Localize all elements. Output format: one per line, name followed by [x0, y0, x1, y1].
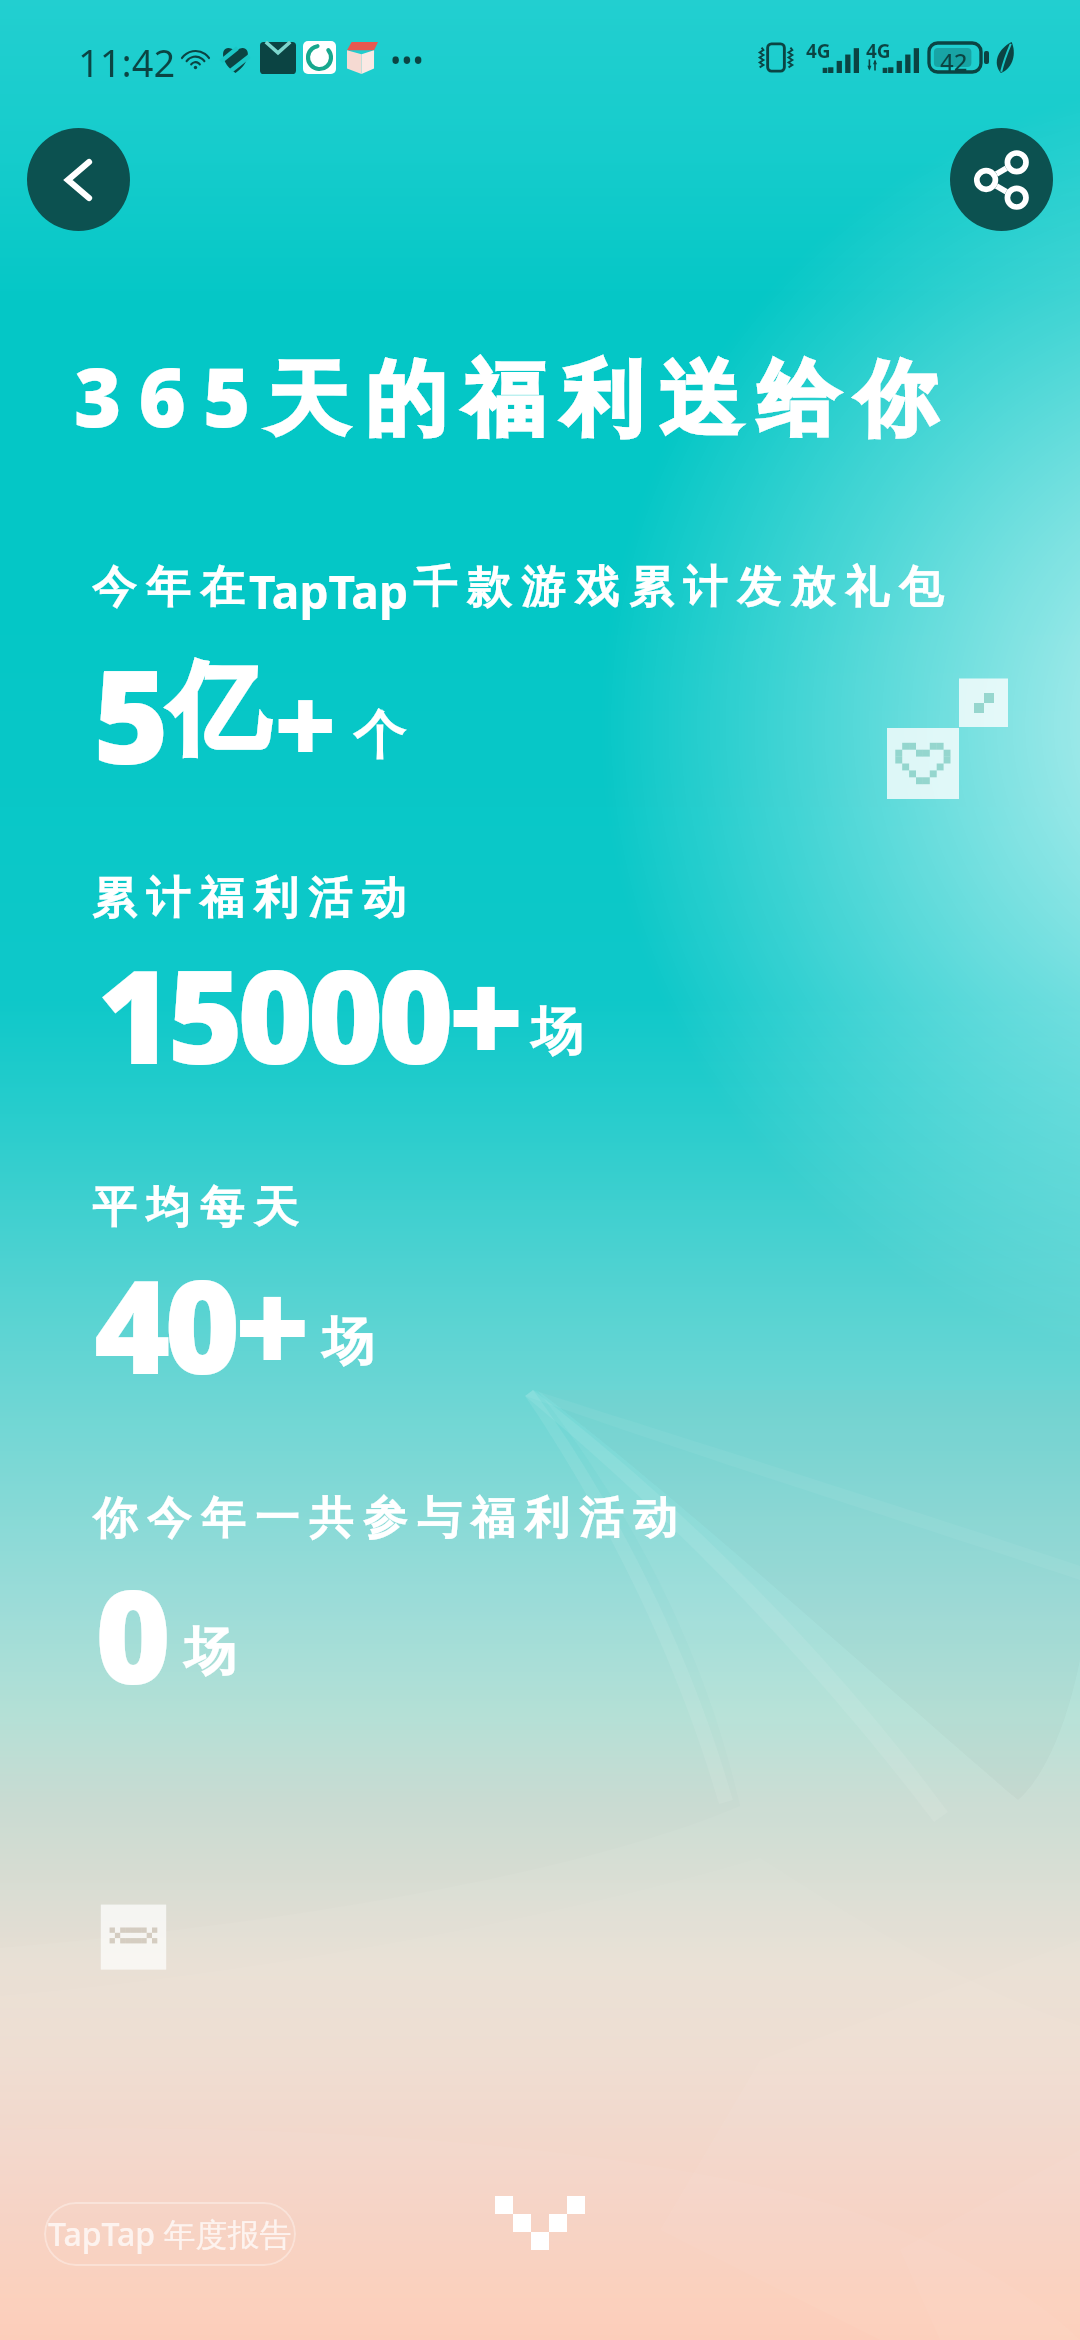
staticText: 个: [353, 703, 405, 769]
button[interactable]: TapTap logo: [495, 2196, 585, 2268]
staticText: 15000+: [97, 925, 519, 1102]
staticText: 5: [93, 625, 164, 802]
staticText: 千款游戏累计发放礼包: [408, 560, 948, 615]
staticText: 累计福利活动: [87, 871, 411, 926]
staticText: 平均每天: [87, 1180, 303, 1235]
staticText: TapTap 年度报告: [48, 2212, 292, 2256]
staticText: 365天的福利送给你: [74, 340, 954, 451]
staticText: 场: [184, 1619, 236, 1685]
staticText: TapTap: [249, 560, 408, 623]
button[interactable]: Back: [27, 128, 130, 231]
staticText: •••: [390, 40, 424, 81]
staticText: 今年在: [87, 560, 249, 615]
staticText: 11:42: [78, 36, 176, 88]
staticText: 场: [531, 999, 583, 1065]
staticText: 40+: [94, 1235, 305, 1412]
button[interactable]: Share: [950, 128, 1053, 231]
staticText: 场: [322, 1309, 374, 1375]
staticText: 0: [95, 1545, 166, 1722]
button[interactable]: TapTap 年度报告: [44, 2202, 296, 2266]
staticText: 4G: [866, 38, 891, 64]
staticText: +: [274, 650, 337, 796]
staticText: 42: [940, 45, 968, 78]
staticText: 4G: [806, 38, 831, 64]
staticText: 亿: [168, 647, 268, 773]
staticText: 你今年一共参与福利活动: [88, 1491, 682, 1546]
